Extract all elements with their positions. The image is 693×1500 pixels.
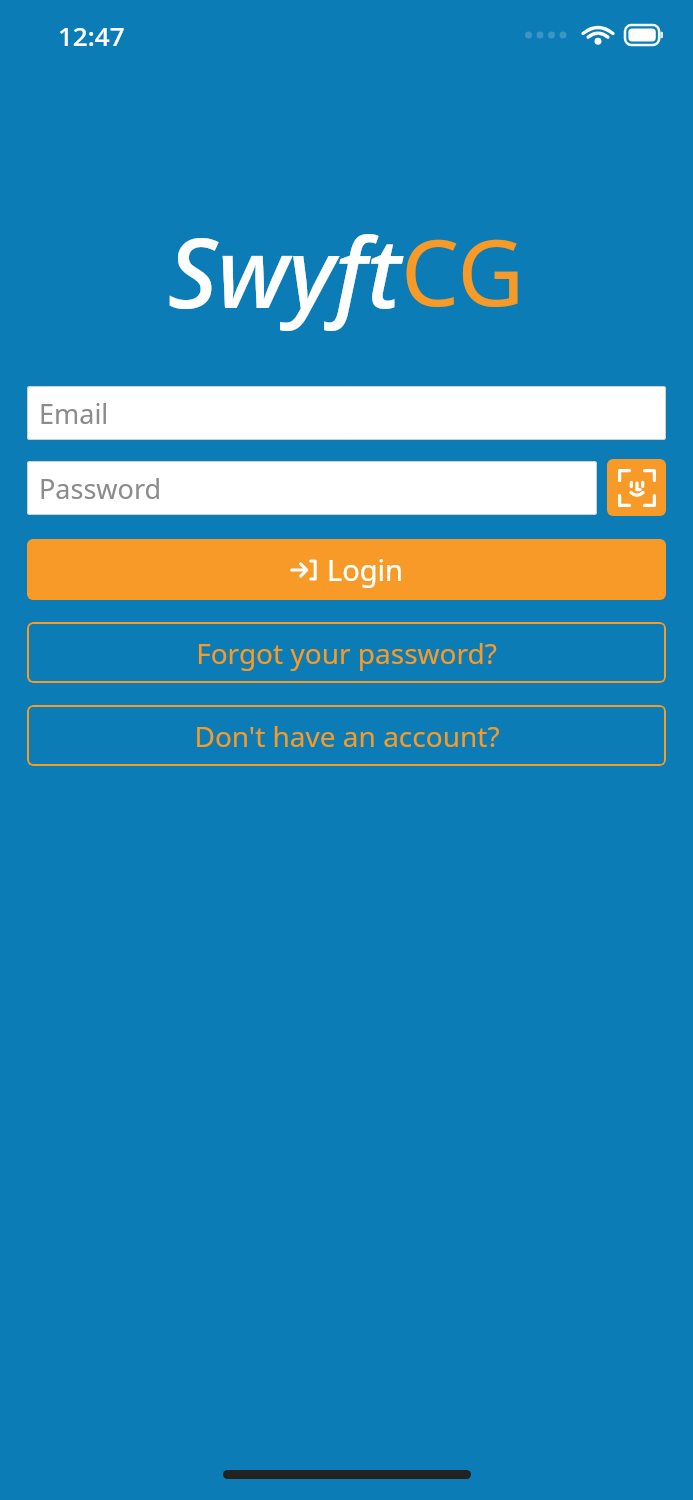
staticText: Swyft [168, 205, 401, 336]
staticText: CG [401, 208, 525, 333]
button[interactable]: Face ID login [607, 459, 666, 516]
staticText: Don't have an account? [194, 717, 500, 755]
staticText: Login [327, 550, 403, 589]
button[interactable]: Forgot your password? [27, 622, 666, 683]
button[interactable]: Password [27, 461, 597, 515]
staticText: Password [39, 470, 162, 507]
button[interactable]: Don't have an account? [27, 705, 666, 766]
button[interactable]: Email [27, 386, 666, 440]
staticText: 12:47 [58, 18, 125, 53]
staticText: Forgot your password? [196, 634, 497, 672]
staticText: Email [39, 395, 109, 432]
button[interactable]: Login [27, 539, 666, 600]
